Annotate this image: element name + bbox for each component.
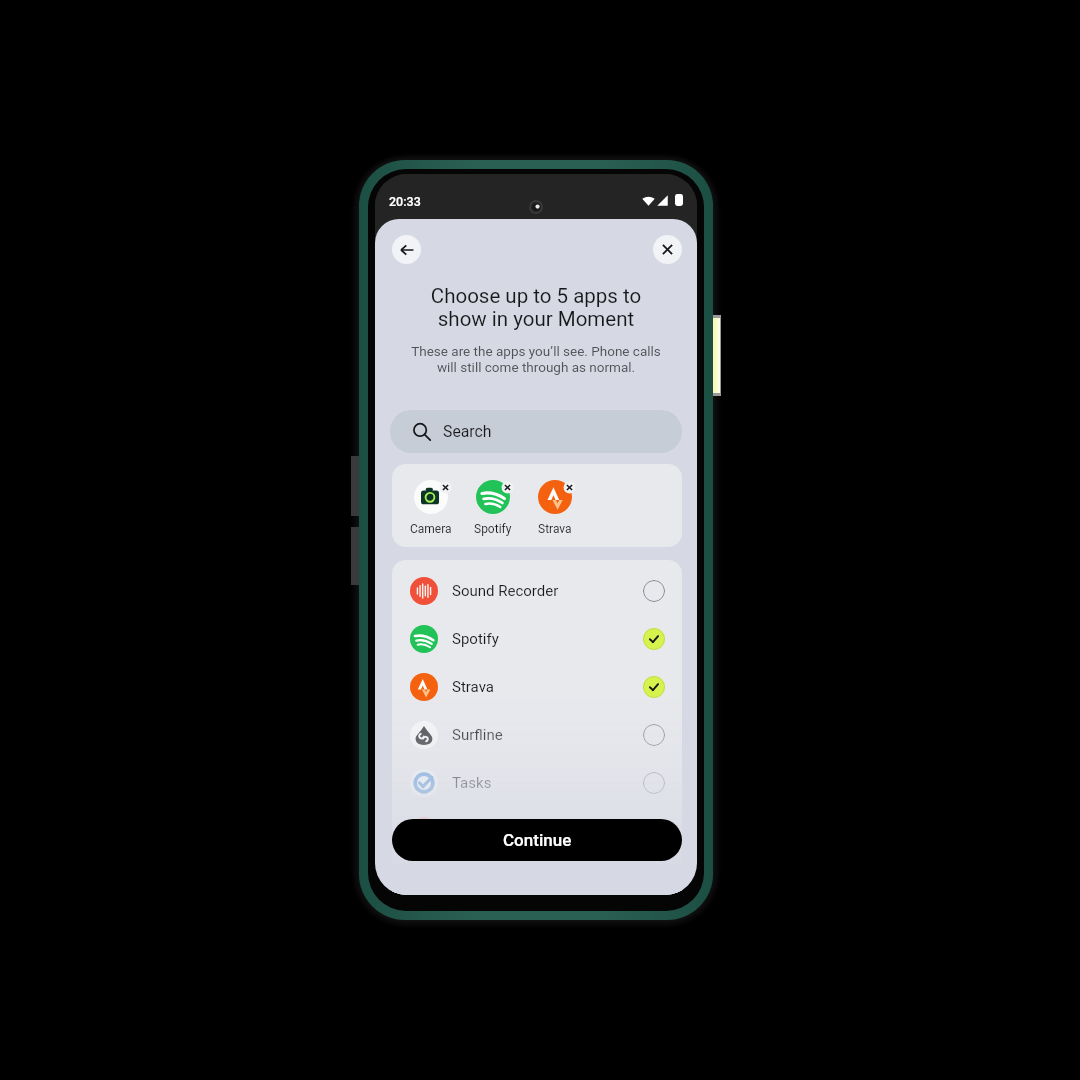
- staticText: 20:33: [389, 194, 421, 209]
- staticText: Tasks: [452, 774, 492, 792]
- button[interactable]: Surfline: [392, 711, 682, 759]
- button[interactable]: Remove Camera: [400, 480, 462, 536]
- staticText: Strava: [538, 522, 572, 536]
- button[interactable]: Sound Recorder: [392, 807, 682, 855]
- staticText: Continue: [503, 830, 572, 850]
- button[interactable]: Remove Spotify: [462, 480, 524, 536]
- staticText: Spotify: [452, 630, 499, 648]
- button[interactable]: Remove Strava: [524, 480, 586, 536]
- button[interactable]: Remove Spotify: [501, 481, 514, 494]
- staticText: Search: [443, 422, 492, 441]
- staticText: These are the apps you’ll see. Phone cal…: [381, 343, 691, 375]
- button[interactable]: Sound Recorder: [392, 567, 682, 615]
- staticText: Camera: [410, 522, 452, 536]
- staticText: Strava: [452, 678, 494, 696]
- staticText: Sound Recorder: [452, 822, 559, 840]
- button[interactable]: Continue: [392, 819, 682, 861]
- button[interactable]: Search: [390, 410, 682, 453]
- button[interactable]: Back: [392, 235, 421, 264]
- staticText: Choose up to 5 apps to show in your Mome…: [385, 284, 687, 331]
- button[interactable]: Remove Strava: [563, 481, 576, 494]
- button[interactable]: Spotify: [392, 615, 682, 663]
- button[interactable]: Tasks: [392, 759, 682, 807]
- staticText: Sound Recorder: [452, 582, 559, 600]
- button[interactable]: Close: [653, 235, 682, 264]
- button[interactable]: Strava: [392, 663, 682, 711]
- button[interactable]: Remove Camera: [439, 481, 452, 494]
- staticText: Spotify: [474, 522, 512, 536]
- staticText: Surfline: [452, 726, 503, 744]
